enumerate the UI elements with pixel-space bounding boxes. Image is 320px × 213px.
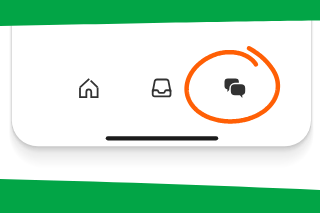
button[interactable]: Home <box>61 64 117 112</box>
button[interactable]: Chat <box>207 64 263 112</box>
button[interactable]: All inboxes <box>134 64 190 112</box>
